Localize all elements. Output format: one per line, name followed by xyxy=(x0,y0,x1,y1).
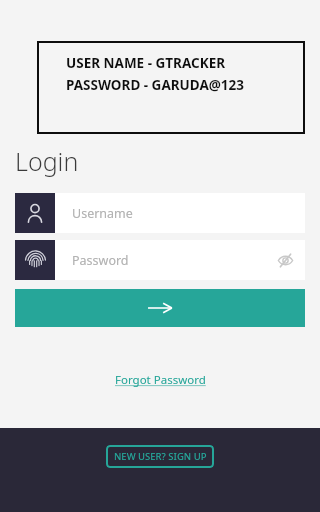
staticText: Username xyxy=(72,205,133,222)
button[interactable]: Password xyxy=(15,240,305,280)
button[interactable]: Forgot Password xyxy=(109,369,212,391)
button[interactable]: Show password xyxy=(268,243,302,277)
staticText: Forgot Password xyxy=(115,372,206,388)
staticText: PASSWORD - GARUDA@123 xyxy=(66,76,245,94)
button[interactable]: Sign in xyxy=(15,289,305,327)
staticText: USER NAME - GTRACKER xyxy=(66,54,226,72)
button[interactable]: NEW USER? SIGN UP xyxy=(106,445,214,468)
staticText: NEW USER? SIGN UP xyxy=(114,450,207,463)
staticText: Login xyxy=(15,144,79,178)
staticText: Password xyxy=(72,252,129,269)
button[interactable]: Username xyxy=(15,193,305,233)
